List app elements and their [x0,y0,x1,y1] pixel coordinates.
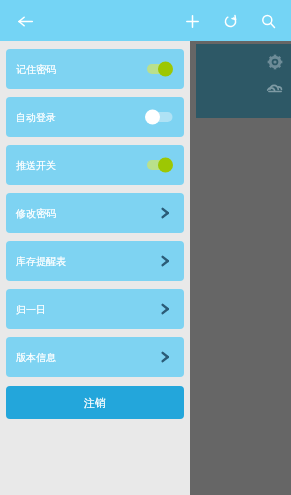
staticText: 推送开关 [16,159,56,172]
button[interactable]: Refresh [215,6,245,36]
staticText: 归一日 [16,303,46,316]
button[interactable]: On [144,61,174,77]
button[interactable]: 版本信息 [6,337,184,377]
staticText: 版本信息 [16,351,56,364]
staticText: 注销 [84,396,106,410]
staticText: 库存提醒表 [16,255,66,268]
button[interactable]: Settings [267,54,283,70]
button[interactable]: On [144,157,174,173]
button[interactable]: Off [144,109,174,125]
button[interactable]: Search [253,6,283,36]
button[interactable]: 库存提醒表 [6,241,184,281]
button[interactable]: 注销 [6,386,184,419]
staticText: 自动登录 [16,111,56,124]
button[interactable]: 推送开关 [6,145,184,185]
button[interactable]: 归一日 [6,289,184,329]
staticText: 记住密码 [16,63,56,76]
button[interactable]: Add [177,6,207,36]
button[interactable]: Back [10,6,40,36]
staticText: 修改密码 [16,207,56,220]
button[interactable]: 记住密码 [6,49,184,89]
button[interactable]: Cloud [266,80,284,98]
button[interactable]: 修改密码 [6,193,184,233]
button[interactable]: 自动登录 [6,97,184,137]
